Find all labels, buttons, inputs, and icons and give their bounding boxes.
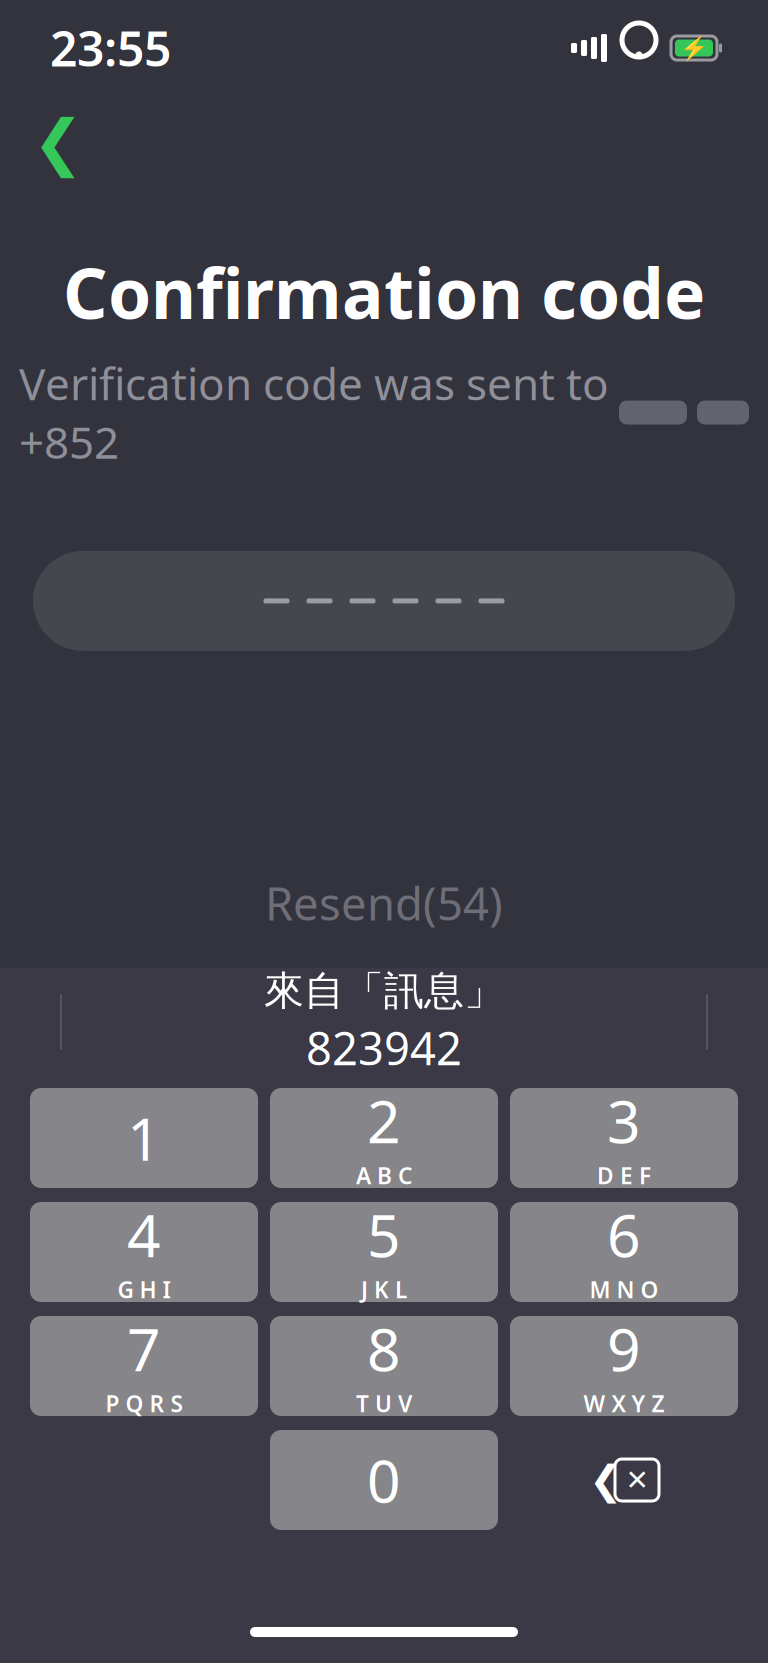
staticText: ⚡ — [680, 35, 708, 61]
staticText: A B C — [356, 1160, 412, 1190]
button[interactable]: Confirmation code field — [33, 551, 735, 651]
button[interactable]: 6 — [510, 1202, 738, 1302]
staticText: J K L — [361, 1274, 407, 1304]
button[interactable]: Delete — [510, 1430, 738, 1530]
staticText: ✕ — [625, 1464, 648, 1496]
staticText: 來自「訊息」 — [264, 966, 504, 1015]
button[interactable]: 來自「訊息」 — [264, 966, 504, 1078]
button[interactable]: Back — [18, 102, 98, 182]
staticText: 4 — [127, 1195, 161, 1273]
staticText: 8 — [367, 1309, 401, 1387]
staticText: 23:55 — [50, 16, 171, 80]
staticText: 1 — [127, 1099, 161, 1177]
staticText: 3 — [607, 1081, 641, 1159]
button[interactable]: 4 — [30, 1202, 258, 1302]
staticText: P Q R S — [105, 1388, 182, 1418]
button[interactable]: Resend(54) — [265, 878, 503, 928]
staticText: 5 — [367, 1195, 401, 1273]
button[interactable]: 0 — [270, 1430, 498, 1530]
staticText: G H I — [117, 1274, 170, 1304]
staticText: D E F — [597, 1160, 651, 1190]
staticText: ❮ — [32, 107, 83, 177]
button[interactable]: 9 — [510, 1316, 738, 1416]
staticText: ❮ — [589, 1457, 623, 1503]
staticText: Resend(54) — [265, 873, 503, 933]
staticText: T U V — [356, 1388, 412, 1418]
staticText: 7 — [127, 1309, 161, 1387]
staticText: 9 — [607, 1309, 641, 1387]
button[interactable]: 8 — [270, 1316, 498, 1416]
staticText: W X Y Z — [583, 1388, 664, 1418]
staticText: 823942 — [306, 1017, 462, 1078]
button[interactable]: 5 — [270, 1202, 498, 1302]
button[interactable]: 7 — [30, 1316, 258, 1416]
button[interactable]: 2 — [270, 1088, 498, 1188]
staticText: M N O — [589, 1274, 658, 1304]
button[interactable]: 3 — [510, 1088, 738, 1188]
staticText: 0 — [367, 1441, 401, 1519]
staticText: Verification code was sent to +852 — [19, 354, 609, 471]
staticText: 6 — [607, 1195, 641, 1273]
button[interactable]: 1 — [30, 1088, 258, 1188]
staticText: 2 — [367, 1081, 401, 1159]
staticText: Confirmation code — [63, 246, 705, 338]
